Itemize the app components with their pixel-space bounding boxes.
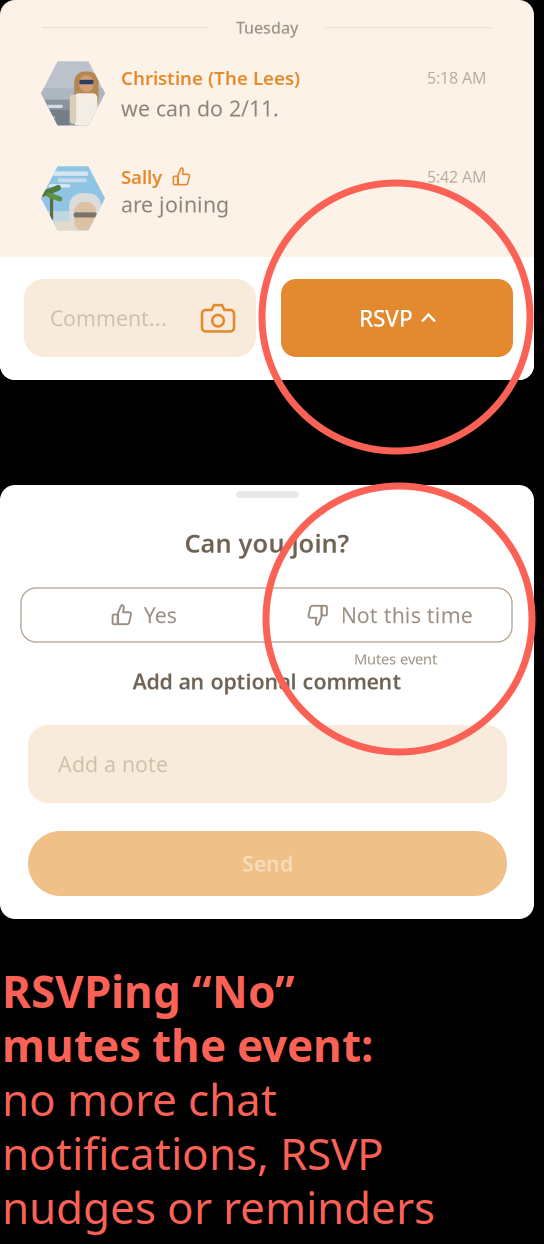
button[interactable]: RSVP [281,279,513,357]
staticText: 5:18 AM [427,67,487,88]
staticText: Not this time [341,601,473,629]
staticText: Mutes event [354,649,437,668]
button[interactable]: Add a note [28,725,507,803]
staticText: Add a note [58,750,168,778]
staticText: Sally [121,164,162,189]
staticText: Yes [144,601,177,629]
button[interactable]: Comment... [24,279,256,357]
staticText: Can you join? [184,526,349,560]
staticText: 5:42 AM [427,166,487,187]
staticText: Add an optional comment [132,667,401,695]
button[interactable]: Not this time [267,588,512,642]
staticText: RSVP [359,303,413,333]
staticText: notifications, RSVP [2,1124,384,1182]
staticText: we can do 2/11. [121,94,279,122]
button[interactable]: Send [28,831,507,896]
staticText: nudges or reminders [2,1178,435,1236]
staticText: Tuesday [236,17,298,38]
staticText: RSVPing “No” [2,962,295,1020]
staticText: Christine (The Lees) [121,65,300,90]
staticText: Comment... [50,304,167,332]
button[interactable]: Yes [21,588,266,642]
staticText: Send [242,849,293,878]
staticText: no more chat [2,1070,277,1128]
staticText: are joining [121,190,229,218]
staticText: mutes the event: [2,1016,373,1074]
